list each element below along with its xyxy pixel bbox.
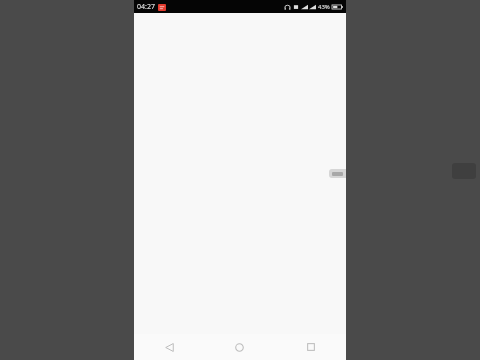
staticText: 43% bbox=[318, 3, 330, 11]
button[interactable]: Side panel handle bbox=[329, 169, 346, 178]
button[interactable]: Recent apps bbox=[275, 334, 346, 360]
button[interactable]: Home bbox=[204, 334, 275, 360]
staticText: 04:27 bbox=[137, 2, 155, 12]
button[interactable]: Back bbox=[134, 334, 204, 360]
